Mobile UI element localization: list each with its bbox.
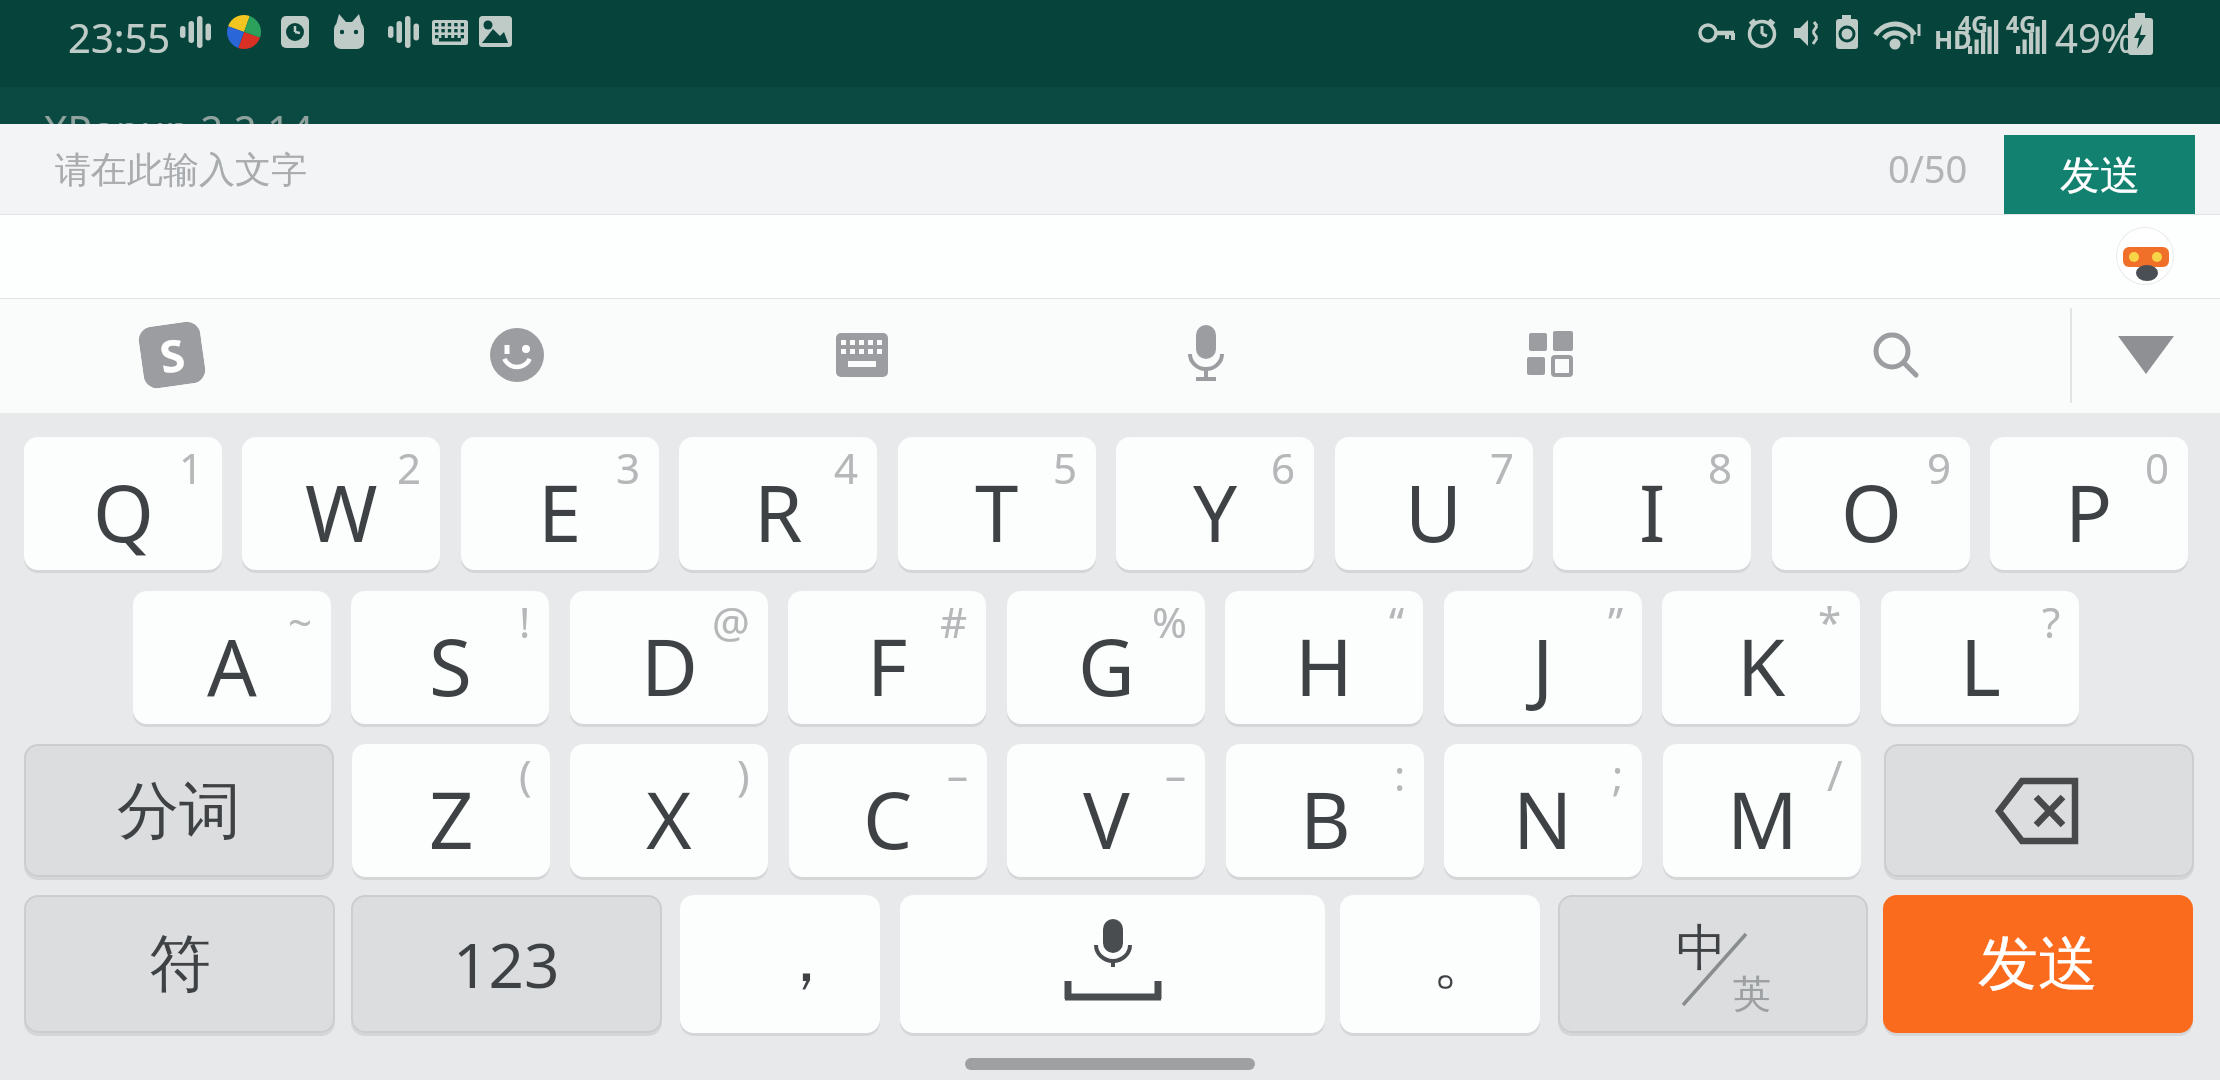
button[interactable]: Y (1116, 437, 1314, 570)
button[interactable]: 123 (351, 895, 662, 1033)
button[interactable] (1860, 319, 1932, 391)
button[interactable]: T (898, 437, 1096, 570)
button[interactable]: S (351, 591, 549, 724)
button[interactable]: 符 (24, 895, 335, 1033)
staticText: T (975, 459, 1019, 565)
button[interactable]: 发送 (1883, 895, 2193, 1033)
staticText: 4G (2006, 8, 2036, 39)
staticText: 4G (1958, 8, 1988, 39)
staticText: # (940, 593, 968, 650)
button[interactable]: K (1662, 591, 1860, 724)
button[interactable]: M (1663, 744, 1861, 877)
staticText: 0 (2145, 439, 2170, 496)
staticText: 中 (1676, 917, 1726, 980)
staticText: B (1300, 766, 1351, 872)
button[interactable] (826, 319, 898, 391)
staticText: XPopup 2.2.14 (44, 102, 314, 124)
button[interactable]: 中 (1558, 895, 1868, 1033)
staticText: ; (1612, 746, 1624, 803)
button[interactable] (1884, 744, 2194, 877)
staticText: R (754, 459, 803, 565)
button[interactable]: P (1990, 437, 2188, 570)
button[interactable] (1170, 319, 1242, 391)
staticText: P (2065, 459, 2113, 565)
staticText: A (207, 613, 257, 719)
button[interactable]: S (136, 319, 208, 391)
button[interactable]: Q (24, 437, 222, 570)
staticText: HD (1934, 22, 1972, 56)
button[interactable]: Z (352, 744, 550, 877)
staticText: H (1295, 613, 1353, 719)
staticText: V (1083, 766, 1130, 872)
staticText: 5 (1053, 439, 1078, 496)
staticText: 2 (397, 439, 422, 496)
button[interactable] (2116, 227, 2174, 285)
staticText: ) (737, 746, 750, 803)
button[interactable]: 发送 (2004, 135, 2195, 214)
staticText: 分词 (117, 772, 241, 850)
button[interactable]: X (570, 744, 768, 877)
button[interactable]: G (1007, 591, 1205, 724)
button[interactable] (2106, 319, 2186, 391)
button[interactable]: J (1444, 591, 1642, 724)
button[interactable]: W (242, 437, 440, 570)
staticText: W (305, 459, 378, 565)
button[interactable]: ， (680, 895, 880, 1033)
button[interactable]: O (1772, 437, 1970, 570)
staticText: 8 (1708, 439, 1733, 496)
staticText: – (1165, 746, 1187, 803)
staticText: 英 (1733, 970, 1771, 1018)
staticText: @ (712, 593, 750, 650)
button[interactable]: N (1444, 744, 1642, 877)
staticText: I (1639, 459, 1666, 565)
button[interactable]: 。 (1340, 895, 1540, 1033)
button[interactable]: B (1226, 744, 1424, 877)
button[interactable]: A (133, 591, 331, 724)
button[interactable]: L (1881, 591, 2079, 724)
staticText: ， (773, 917, 839, 1000)
button[interactable]: U (1335, 437, 1533, 570)
button[interactable]: F (788, 591, 986, 724)
button[interactable]: E (461, 437, 659, 570)
staticText: ~ (288, 593, 313, 650)
staticText: 23:55 (68, 10, 171, 64)
button[interactable]: 分词 (24, 744, 334, 877)
staticText: 0/50 (1888, 142, 1968, 194)
staticText: U (1405, 459, 1463, 565)
button[interactable]: V (1007, 744, 1205, 877)
staticText: – (947, 746, 969, 803)
staticText: 6 (1271, 439, 1296, 496)
staticText: 。 (1432, 920, 1496, 1001)
staticText: ? (2042, 593, 2061, 650)
staticText: 符 (149, 925, 211, 1003)
staticText: % (1152, 593, 1187, 650)
staticText: O (1841, 459, 1902, 565)
staticText: ( (519, 746, 532, 803)
staticText: J (1532, 613, 1554, 719)
staticText: ” (1608, 593, 1624, 650)
button[interactable]: R (679, 437, 877, 570)
staticText: S (429, 613, 472, 719)
staticText: 4 (834, 439, 859, 496)
button[interactable]: C (789, 744, 987, 877)
staticText: ! (519, 593, 531, 650)
staticText: 3 (616, 439, 641, 496)
button[interactable] (481, 319, 553, 391)
staticText: 发送 (2060, 150, 2140, 200)
staticText: 1 (179, 439, 204, 496)
staticText: E (538, 459, 582, 565)
button[interactable]: I (1553, 437, 1751, 570)
button[interactable]: H (1225, 591, 1423, 724)
button[interactable] (1515, 319, 1587, 391)
button[interactable] (900, 895, 1325, 1033)
staticText: 9 (1927, 439, 1952, 496)
button[interactable]: D (570, 591, 768, 724)
staticText: 发送 (1978, 926, 2098, 1002)
staticText: F (867, 613, 908, 719)
staticText: Y (1193, 459, 1238, 565)
staticText: 7 (1490, 439, 1515, 496)
staticText: N (1513, 766, 1573, 872)
staticText: L (1960, 613, 2001, 719)
staticText: S (156, 323, 189, 386)
staticText: 123 (453, 922, 560, 1006)
